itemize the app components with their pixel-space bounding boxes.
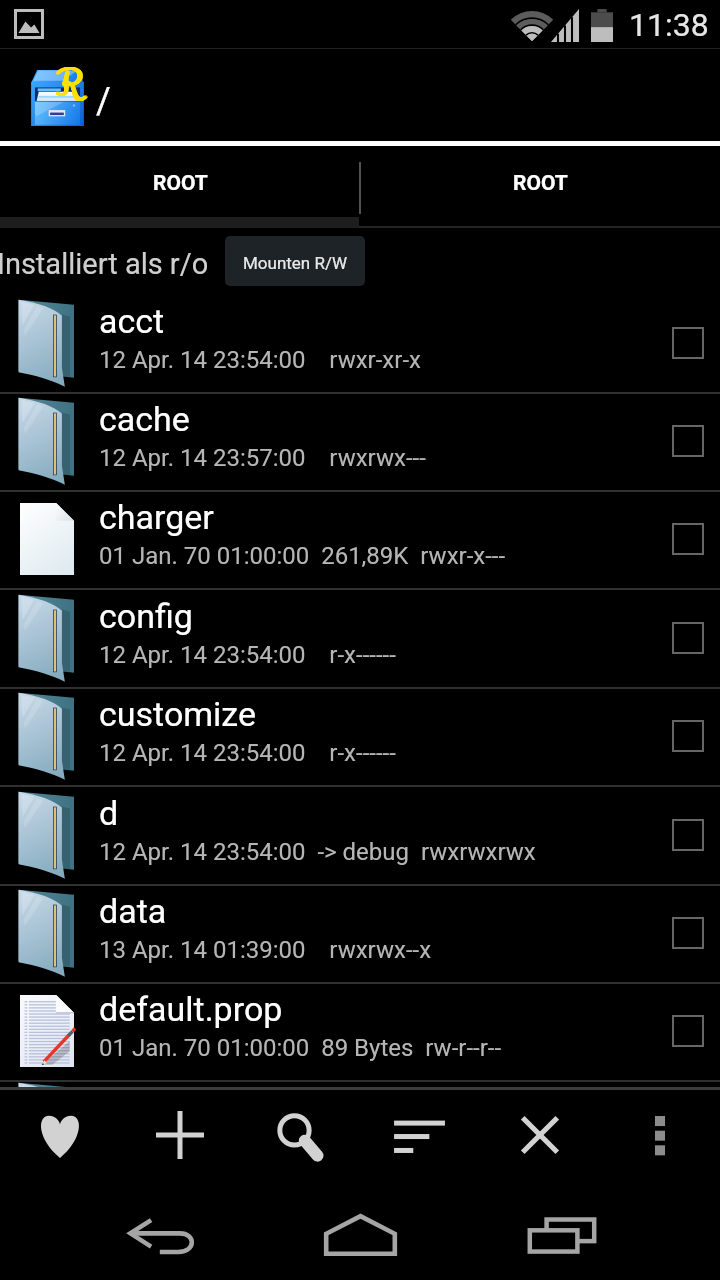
button[interactable]: charger (0, 490, 720, 588)
staticText: 12 Apr. 14 23:54:00 r-x------ (99, 641, 396, 669)
staticText: R (58, 60, 84, 104)
button[interactable]: Select (672, 327, 704, 359)
staticText: R (56, 61, 82, 105)
staticText: 12 Apr. 14 23:57:00 rwxrwx--- (99, 444, 426, 472)
staticText: / (96, 80, 111, 122)
button[interactable]: More options (600, 1087, 720, 1180)
staticText: charger (99, 497, 214, 537)
staticText: R (57, 62, 83, 106)
button[interactable]: Sort (360, 1087, 480, 1180)
staticText: R (56, 61, 82, 105)
button[interactable]: Add (120, 1087, 240, 1180)
staticText: R (57, 60, 83, 104)
button[interactable]: Select (672, 425, 704, 457)
staticText: 12 Apr. 14 23:54:00 -> debug rwxrwxrwx (99, 838, 536, 866)
button[interactable]: customize (0, 687, 720, 785)
button[interactable]: Select (672, 523, 704, 555)
staticText: config (99, 596, 193, 636)
button[interactable]: Select (672, 1015, 704, 1047)
staticText: data (99, 891, 167, 931)
button[interactable]: Select (672, 720, 704, 752)
staticText: R (57, 61, 83, 105)
staticText: cache (99, 399, 190, 439)
button[interactable]: config (0, 589, 720, 687)
staticText: ROOT (513, 171, 568, 196)
staticText: 01 Jan. 70 01:00:00 261,89K rwxr-x--- (99, 542, 506, 570)
button[interactable]: Recent apps (502, 1180, 622, 1280)
button[interactable]: Select (672, 917, 704, 949)
staticText: 11:38 (629, 6, 709, 44)
button[interactable]: Close (480, 1087, 600, 1180)
button[interactable]: default.prop (0, 982, 720, 1080)
staticText: R (58, 61, 84, 105)
staticText: acct (99, 301, 165, 341)
staticText: default.prop (99, 989, 283, 1029)
button[interactable]: Mounten R/W (225, 236, 365, 286)
staticText: Installiert als r/o (0, 247, 209, 281)
staticText: ROOT (153, 171, 208, 196)
button[interactable]: Home (300, 1180, 420, 1280)
staticText: 12 Apr. 14 23:54:00 r-x------ (99, 739, 396, 767)
button[interactable]: Favorites (0, 1087, 120, 1180)
staticText: R (59, 61, 85, 105)
button[interactable]: ROOT (0, 146, 360, 228)
button[interactable]: Select (672, 819, 704, 851)
button[interactable]: Back (99, 1180, 219, 1280)
button[interactable]: acct (0, 294, 720, 392)
staticText: Mounten R/W (243, 253, 348, 273)
button[interactable]: Up (30, 67, 85, 129)
staticText: R (56, 60, 82, 104)
button[interactable]: cache (0, 392, 720, 490)
staticText: R (58, 62, 84, 106)
staticText: 12 Apr. 14 23:54:00 rwxr-xr-x (99, 346, 421, 374)
staticText: 01 Jan. 70 01:00:00 89 Bytes rw-r--r-- (99, 1034, 502, 1062)
button[interactable]: d (0, 786, 720, 884)
staticText: R (56, 62, 82, 106)
button[interactable]: Select (672, 622, 704, 654)
staticText: customize (99, 694, 256, 734)
staticText: d (99, 793, 119, 833)
button[interactable]: Search (240, 1087, 360, 1180)
staticText: 13 Apr. 14 01:39:00 rwxrwx--x (99, 936, 432, 964)
button[interactable]: data (0, 884, 720, 982)
button[interactable]: ROOT (360, 146, 720, 228)
